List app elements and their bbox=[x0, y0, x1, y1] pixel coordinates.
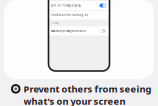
staticText: Maximum privacy protection bbox=[50, 29, 86, 33]
staticText: what's on your screen bbox=[23, 95, 125, 106]
staticText: Prevent others from seeing bbox=[23, 83, 151, 95]
staticText: Turn on Privacy display bbox=[50, 4, 80, 7]
staticText: Conditions for turning on bbox=[50, 13, 88, 17]
staticText: Privacy bbox=[50, 21, 58, 25]
